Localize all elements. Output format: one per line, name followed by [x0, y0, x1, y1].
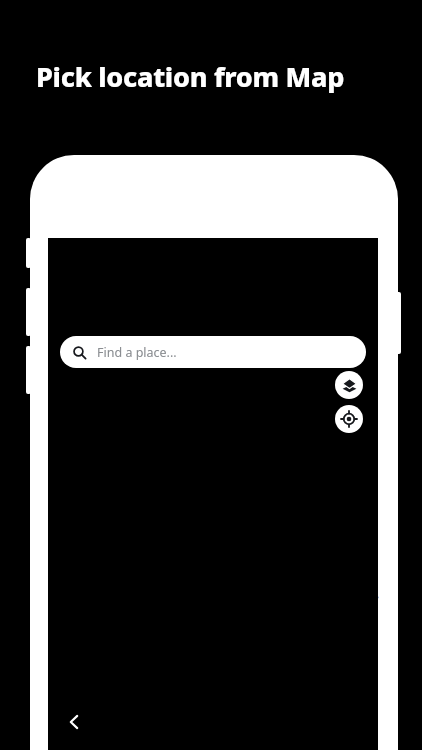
button[interactable]: My location	[335, 405, 363, 433]
button[interactable]: Map layers	[335, 371, 363, 399]
staticText: Pick location from Map	[36, 58, 422, 750]
button[interactable]: Find a place...	[60, 336, 366, 368]
button[interactable]: Back	[52, 700, 96, 744]
staticText: Beck	[54, 709, 84, 732]
staticText: Find a place...	[97, 344, 177, 361]
